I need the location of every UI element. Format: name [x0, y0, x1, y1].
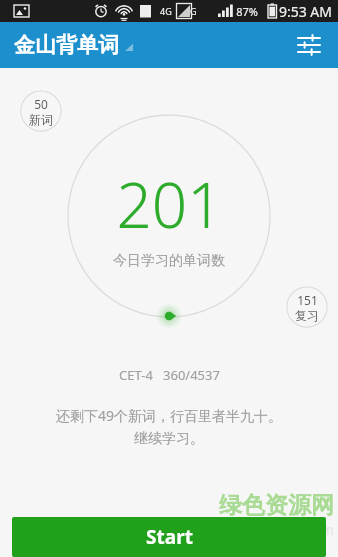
staticText: 新词	[29, 112, 53, 127]
staticText: G	[190, 5, 197, 17]
staticText: 复习	[295, 308, 319, 323]
button[interactable]: 151	[286, 286, 328, 328]
staticText: 金山背单词	[14, 32, 119, 58]
staticText: www.downcc.com	[215, 520, 334, 539]
staticText: CET-4 360/4537	[119, 366, 220, 384]
staticText: Start	[146, 524, 193, 550]
staticText: 今日学习的单词数	[113, 252, 225, 270]
staticText: 50	[34, 96, 48, 112]
button[interactable]: 金山背单词	[14, 32, 119, 58]
button[interactable]: 50	[20, 90, 62, 132]
staticText: 9:53 AM	[278, 2, 332, 21]
staticText: 绿色资源网	[219, 491, 334, 520]
staticText: 201	[116, 162, 223, 246]
button[interactable]: Settings	[292, 28, 326, 62]
staticText: 4G	[160, 5, 172, 17]
staticText: 还剩下49个新词，行百里者半九十。 继续学习。	[22, 406, 316, 448]
staticText: 87%	[236, 4, 258, 19]
button[interactable]: Start	[12, 517, 326, 557]
staticText: 151	[297, 292, 318, 308]
